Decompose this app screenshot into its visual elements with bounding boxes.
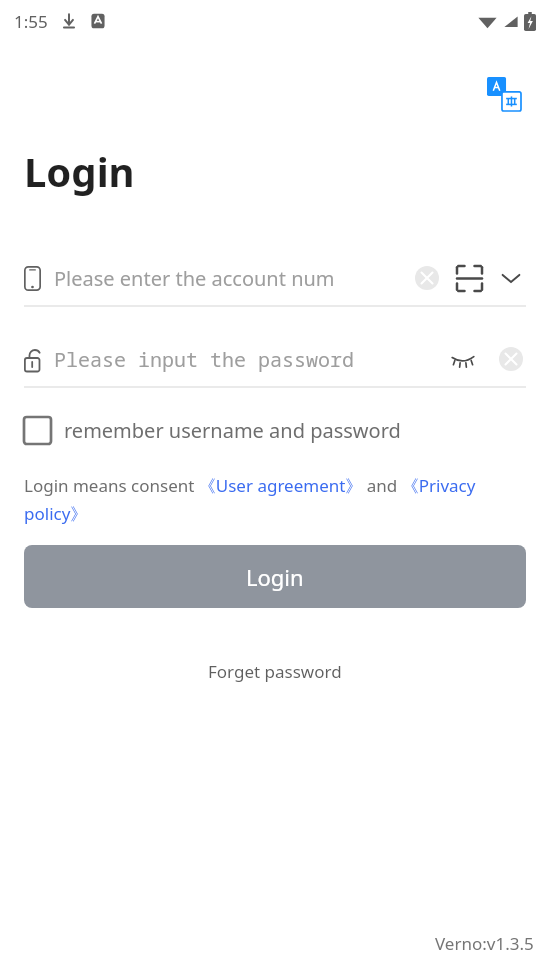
button[interactable]: Clear account xyxy=(412,263,442,293)
staticText: Login xyxy=(246,562,304,592)
button[interactable]: Scan QR code xyxy=(454,263,484,293)
staticText: Login xyxy=(24,144,135,198)
button[interactable]: Forget password xyxy=(196,654,354,689)
button[interactable]: Clear password xyxy=(496,344,526,374)
staticText: Please enter the account num xyxy=(54,265,335,292)
button[interactable]: Switch language xyxy=(482,72,526,116)
staticText: Verno:v1.3.5 xyxy=(435,932,534,955)
button[interactable]: Show password xyxy=(448,344,478,374)
button[interactable]: Login xyxy=(24,545,526,608)
staticText: Forget password xyxy=(208,660,342,683)
staticText: Please input the password xyxy=(54,346,354,373)
staticText: 1:55 xyxy=(14,10,48,33)
staticText: Login means consent 《User agreement》 and… xyxy=(24,474,526,525)
staticText: remember username and password xyxy=(64,417,401,444)
button[interactable]: remember username and password xyxy=(24,411,401,450)
button[interactable]: Login means consent 《User agreement》 and… xyxy=(24,474,526,525)
button[interactable]: Show account history xyxy=(496,263,526,293)
